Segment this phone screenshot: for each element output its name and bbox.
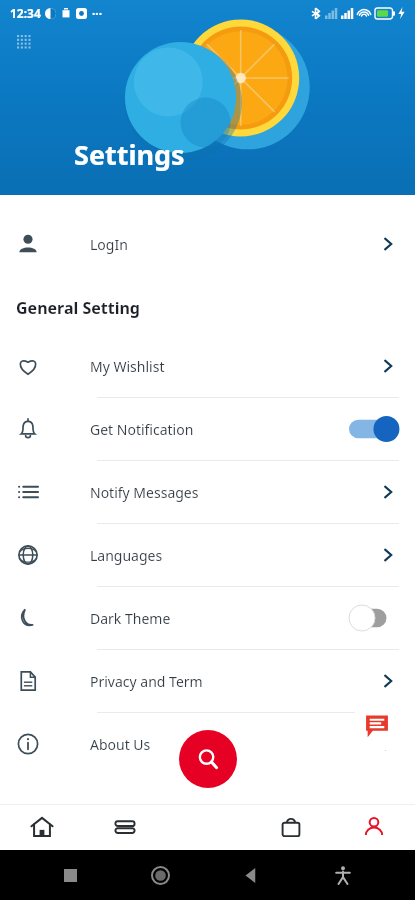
staticText: My Wishlist: [90, 357, 165, 376]
staticText: Settings: [74, 136, 185, 173]
button[interactable]: About Us: [0, 713, 415, 775]
button[interactable]: Home: [0, 804, 83, 850]
button[interactable]: Dark Theme: [0, 587, 415, 649]
button[interactable]: Profile: [332, 804, 415, 850]
button[interactable]: My Wishlist: [0, 335, 415, 397]
button[interactable]: LogIn: [0, 213, 415, 275]
button[interactable]: Cart: [249, 804, 332, 850]
staticText: Notify Messages: [90, 483, 199, 502]
staticText: Privacy and Term: [90, 672, 203, 691]
button[interactable]: Chat: [351, 700, 403, 752]
staticText: Dark Theme: [90, 609, 171, 628]
button[interactable]: Categories: [83, 804, 166, 850]
staticText: LogIn: [90, 235, 128, 254]
button[interactable]: Toggle on: [349, 416, 397, 442]
staticText: 12:34: [10, 5, 41, 21]
button[interactable]: Privacy and Term: [0, 650, 415, 712]
staticText: General Setting: [16, 297, 140, 319]
staticText: Languages: [90, 546, 163, 565]
button[interactable]: Apps: [12, 30, 38, 56]
button[interactable]: Toggle off: [349, 605, 397, 631]
button[interactable]: Languages: [0, 524, 415, 586]
button[interactable]: Get Notification: [0, 398, 415, 460]
staticText: Get Notification: [90, 420, 194, 439]
button[interactable]: Search: [179, 730, 237, 788]
button[interactable]: Notify Messages: [0, 461, 415, 523]
staticText: ···: [92, 5, 103, 21]
staticText: About Us: [90, 735, 151, 754]
